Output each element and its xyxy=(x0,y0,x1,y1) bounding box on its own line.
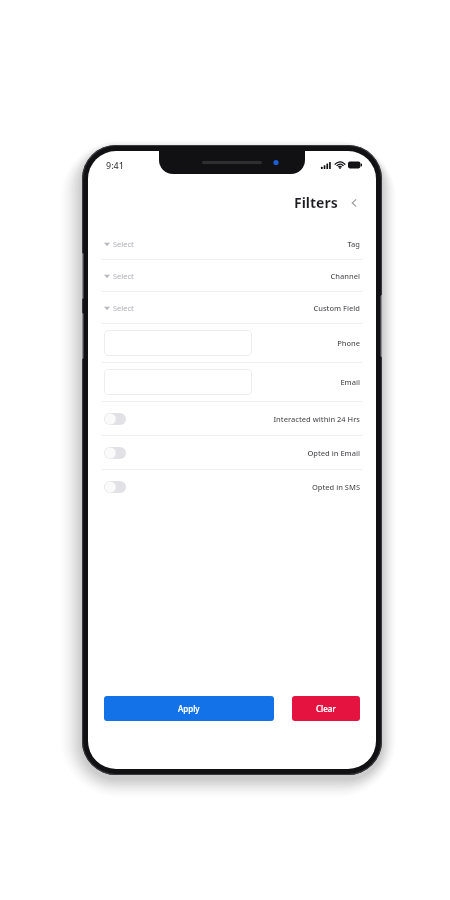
button[interactable]: Select xyxy=(88,228,376,259)
staticText: Apply xyxy=(178,703,200,714)
other: Opted in Email xyxy=(104,447,126,459)
staticText: Select xyxy=(113,303,134,313)
staticText: Channel xyxy=(330,271,360,281)
staticText: Email xyxy=(340,377,360,387)
other: Interacted within 24 Hrs xyxy=(104,413,126,425)
button[interactable]: Back xyxy=(346,196,360,210)
staticText: Phone xyxy=(337,338,360,348)
button[interactable]: Apply xyxy=(104,696,274,721)
staticText: Select xyxy=(113,239,134,249)
button[interactable]: Interacted within 24 Hrs xyxy=(88,402,376,435)
staticText: Opted in Email xyxy=(307,448,360,458)
button[interactable]: Clear xyxy=(292,696,360,721)
staticText: Opted in SMS xyxy=(311,482,360,492)
button[interactable]: Email xyxy=(104,369,252,395)
staticText: Tag xyxy=(347,239,360,249)
staticText: Select xyxy=(113,271,134,281)
button[interactable]: Select xyxy=(88,260,376,291)
button[interactable]: Opted in Email xyxy=(88,436,376,469)
staticText: Clear xyxy=(316,703,336,714)
staticText: 9:41 xyxy=(106,159,124,171)
other: Opted in SMS xyxy=(104,481,126,493)
staticText: Filters xyxy=(294,193,338,212)
staticText: Custom Field xyxy=(313,303,360,313)
staticText: Interacted within 24 Hrs xyxy=(273,414,360,424)
button[interactable]: Select xyxy=(88,292,376,323)
button[interactable]: Phone xyxy=(104,330,252,356)
button[interactable]: Opted in SMS xyxy=(88,470,376,503)
